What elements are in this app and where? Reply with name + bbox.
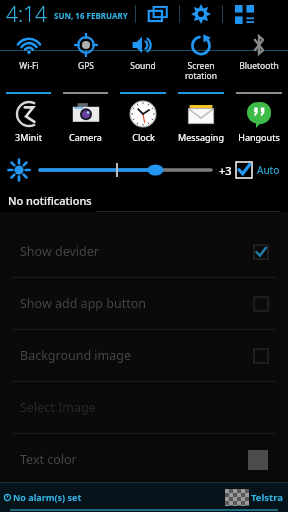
button[interactable]: Recent apps [145,1,171,27]
staticText: Screen rotation [185,60,217,81]
staticText: Select Image [20,399,96,416]
staticText: Background color [20,491,124,508]
button[interactable]: Screen rotation [172,28,230,90]
staticText: Messaging [178,131,224,143]
staticText: +3 [219,163,232,178]
button[interactable]: Auto brightness [236,162,252,178]
staticText: GPS [78,60,94,72]
button[interactable]: Brightness [8,159,30,181]
button[interactable]: Background image [0,330,288,381]
button[interactable]: Bluetooth [230,28,288,90]
button[interactable]: Toggle quick settings [231,1,257,27]
button[interactable]: Settings [188,1,214,27]
staticText: 3Minit [15,131,42,143]
staticText: No notifications [8,193,92,208]
staticText: Bluetooth [239,60,279,72]
button[interactable]: Select Image [0,382,288,433]
staticText: Background image [20,347,132,364]
staticText: Camera [69,131,102,143]
staticText: Text color [20,451,77,468]
button[interactable]: Wi-Fi [0,28,57,90]
staticText: SUN, 16 FEBRUARY [54,10,128,21]
staticText: Show app text [22,130,106,147]
button[interactable]: GPS [57,28,114,90]
button[interactable]: Sound [114,28,172,90]
staticText: Quicklauncher Settings [26,30,168,48]
staticText: Hangouts [238,131,280,143]
button[interactable] [40,158,211,182]
button[interactable]: Background color [0,486,288,512]
staticText: No alarm(s) set [13,491,82,503]
button[interactable]: Show add app button [0,278,288,329]
staticText: Show add app button [20,295,146,312]
staticText: Show devider [20,243,99,260]
staticText: Telstra [251,491,283,504]
button[interactable]: Hangouts [230,90,288,152]
button[interactable]: Camera [57,90,114,152]
button[interactable]: Clock [114,90,172,152]
button[interactable]: Messaging [172,90,230,152]
button[interactable]: Show devider [0,226,288,277]
staticText: Wi-Fi [19,60,39,72]
button[interactable]: 3Minit [0,90,57,152]
staticText: Sound [130,60,156,72]
button[interactable]: Text color [0,434,288,485]
staticText: Auto [257,163,280,177]
staticText: 4:14 [6,0,48,28]
staticText: Clock [132,131,155,143]
